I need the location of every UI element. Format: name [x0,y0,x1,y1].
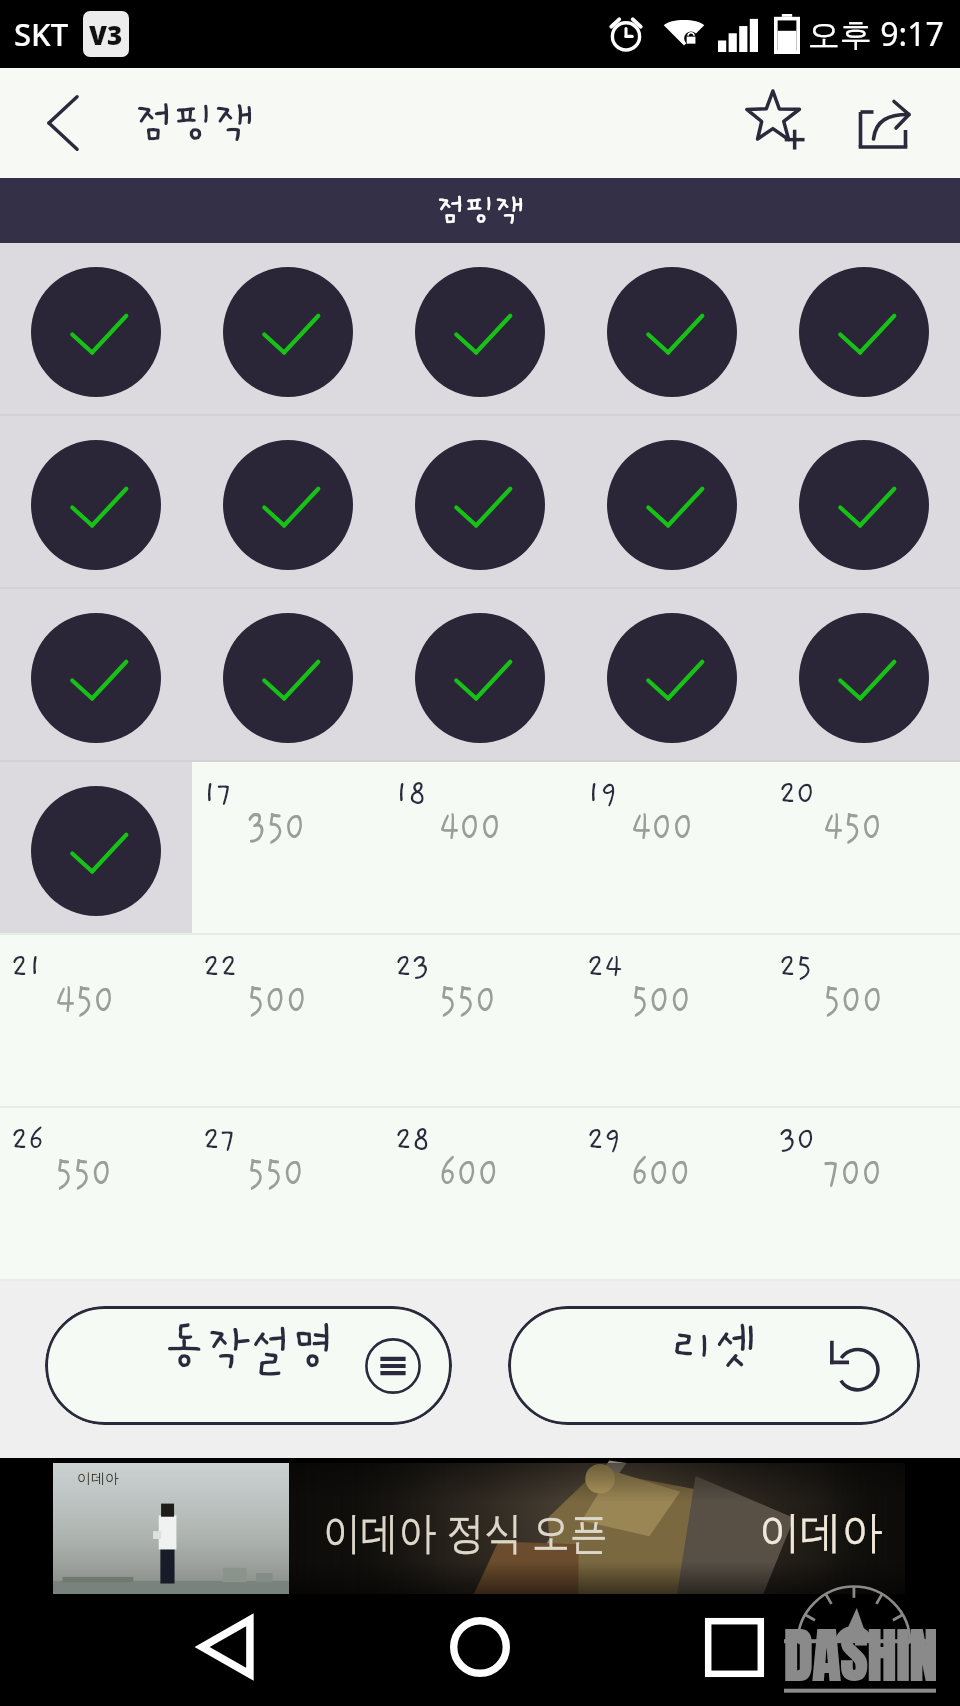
button[interactable] [0,589,192,762]
staticText: 600 [631,1150,691,1196]
button[interactable] [768,416,960,589]
staticText: 700 [823,1150,883,1196]
button[interactable]: Recent apps [690,1603,778,1691]
staticText: 23 [395,949,430,985]
button[interactable] [0,762,192,935]
button[interactable] [384,416,576,589]
staticText: 450 [55,977,115,1023]
button[interactable]: Back [182,1603,270,1691]
staticText: 400 [631,804,694,850]
staticText: 26 [11,1122,45,1158]
button[interactable] [0,416,192,589]
staticText: 350 [247,804,306,850]
staticText: 28 [395,1122,431,1158]
staticText: 리셋 [671,1322,758,1376]
staticText: 500 [631,977,692,1023]
button[interactable]: 21 [0,935,192,1108]
staticText: 22 [203,949,238,985]
button[interactable] [192,416,384,589]
button[interactable]: 이데아 [53,1463,905,1594]
button[interactable]: 30 [768,1108,960,1281]
button[interactable]: 28 [384,1108,576,1281]
staticText: 이데아 [77,1470,119,1488]
button[interactable] [576,589,768,762]
button[interactable]: 23 [384,935,576,1108]
button[interactable]: 리셋 [508,1306,920,1425]
button[interactable]: 동작설명 [45,1306,452,1425]
button[interactable]: Add to favorites [730,68,826,178]
button[interactable] [576,243,768,416]
staticText: 점핑잭 [134,99,255,148]
staticText: 18 [395,776,427,812]
staticText: 600 [439,1150,499,1196]
button[interactable] [576,416,768,589]
staticText: 550 [247,1150,305,1196]
button[interactable] [192,589,384,762]
button[interactable] [192,243,384,416]
staticText: 21 [11,949,42,985]
staticText: 550 [55,1150,113,1196]
button[interactable]: 27 [192,1108,384,1281]
staticText: 19 [587,776,618,812]
staticText: 점핑잭 [436,193,525,229]
button[interactable] [384,589,576,762]
staticText: 29 [587,1122,622,1158]
staticText: 이데아 [759,1505,883,1560]
button[interactable]: Home [436,1603,524,1691]
button[interactable]: Share [836,68,932,178]
staticText: 400 [439,804,502,850]
button[interactable]: Back [0,68,125,178]
staticText: 17 [203,776,232,812]
staticText: 25 [779,949,813,985]
staticText: 20 [779,776,816,812]
button[interactable] [768,589,960,762]
button[interactable]: 17 [192,762,384,935]
staticText: 500 [823,977,884,1023]
staticText: 550 [439,977,497,1023]
button[interactable] [768,243,960,416]
button[interactable]: 20 [768,762,960,935]
staticText: DASHIN [784,1612,936,1699]
button[interactable] [0,243,192,416]
staticText: SKT [14,13,69,55]
staticText: 450 [823,804,883,850]
staticText: V3 [89,17,123,52]
button[interactable]: 29 [576,1108,768,1281]
staticText: 30 [779,1122,816,1158]
staticText: 24 [587,949,623,985]
button[interactable]: 22 [192,935,384,1108]
staticText: 이데아 정식 오픈 [323,1501,608,1561]
staticText: 500 [247,977,308,1023]
button[interactable]: 19 [576,762,768,935]
button[interactable]: 25 [768,935,960,1108]
staticText: 동작설명 [163,1322,335,1376]
button[interactable]: 26 [0,1108,192,1281]
button[interactable] [384,243,576,416]
staticText: 27 [203,1122,236,1158]
button[interactable]: 18 [384,762,576,935]
staticText: 오후 9:17 [808,12,944,56]
button[interactable]: 24 [576,935,768,1108]
